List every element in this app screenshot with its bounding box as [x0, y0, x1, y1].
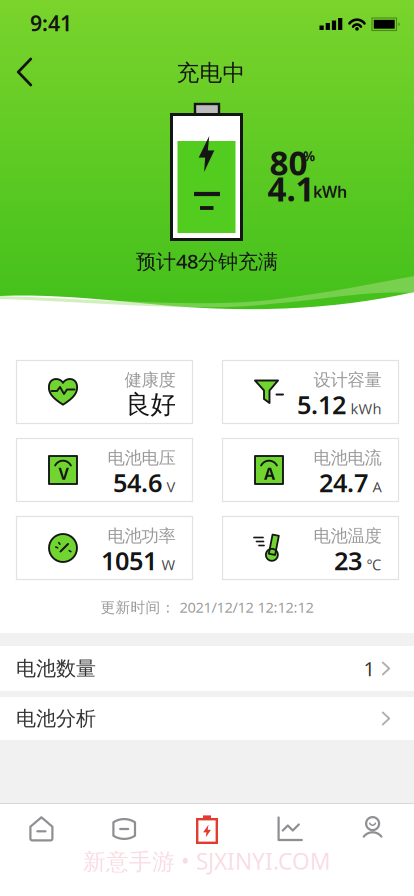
button[interactable]: Charging	[188, 807, 226, 851]
staticText: A	[264, 463, 275, 484]
staticText: 23	[334, 544, 362, 577]
staticText: 4.1	[267, 166, 314, 211]
staticText: 健康度	[124, 369, 175, 391]
button[interactable]: Home	[21, 808, 62, 850]
staticText: W	[161, 555, 175, 574]
staticText: 电池温度	[313, 525, 381, 547]
staticText: 充电中	[176, 59, 245, 87]
button[interactable]: Statistics	[269, 808, 310, 850]
staticText: ℃	[366, 555, 381, 574]
staticText: V	[58, 463, 68, 484]
staticText: 预计48分钟充满	[136, 248, 278, 274]
staticText: V	[166, 477, 175, 496]
staticText: A	[372, 477, 381, 496]
staticText: 9:41	[30, 9, 72, 37]
staticText: kWh	[313, 181, 347, 202]
button[interactable]: Profile	[352, 808, 393, 850]
staticText: 24.7	[319, 466, 368, 499]
staticText: %	[303, 147, 315, 165]
button[interactable]: Back	[8, 49, 41, 95]
staticText: 电池功率	[107, 525, 175, 547]
staticText: 良好	[125, 389, 175, 420]
staticText: 设计容量	[313, 369, 381, 391]
staticText: 电池电流	[313, 447, 381, 469]
staticText: 新意手游 • SJXINYI.COM	[83, 846, 331, 876]
staticText: kWh	[350, 399, 381, 418]
staticText: 电池分析	[16, 706, 96, 731]
button[interactable]: 电池数量	[0, 646, 414, 691]
staticText: 54.6	[113, 466, 162, 499]
staticText: 更新时间： 2021/12/12 12:12:12	[100, 597, 313, 617]
staticText: 1	[363, 655, 374, 682]
button[interactable]: Battery cells	[104, 808, 144, 850]
staticText: 电池数量	[16, 656, 96, 681]
staticText: 电池电压	[107, 447, 175, 469]
button[interactable]: 电池分析	[0, 697, 414, 740]
staticText: 5.12	[297, 388, 346, 421]
staticText: 80	[269, 140, 307, 185]
staticText: 1051	[101, 544, 157, 577]
